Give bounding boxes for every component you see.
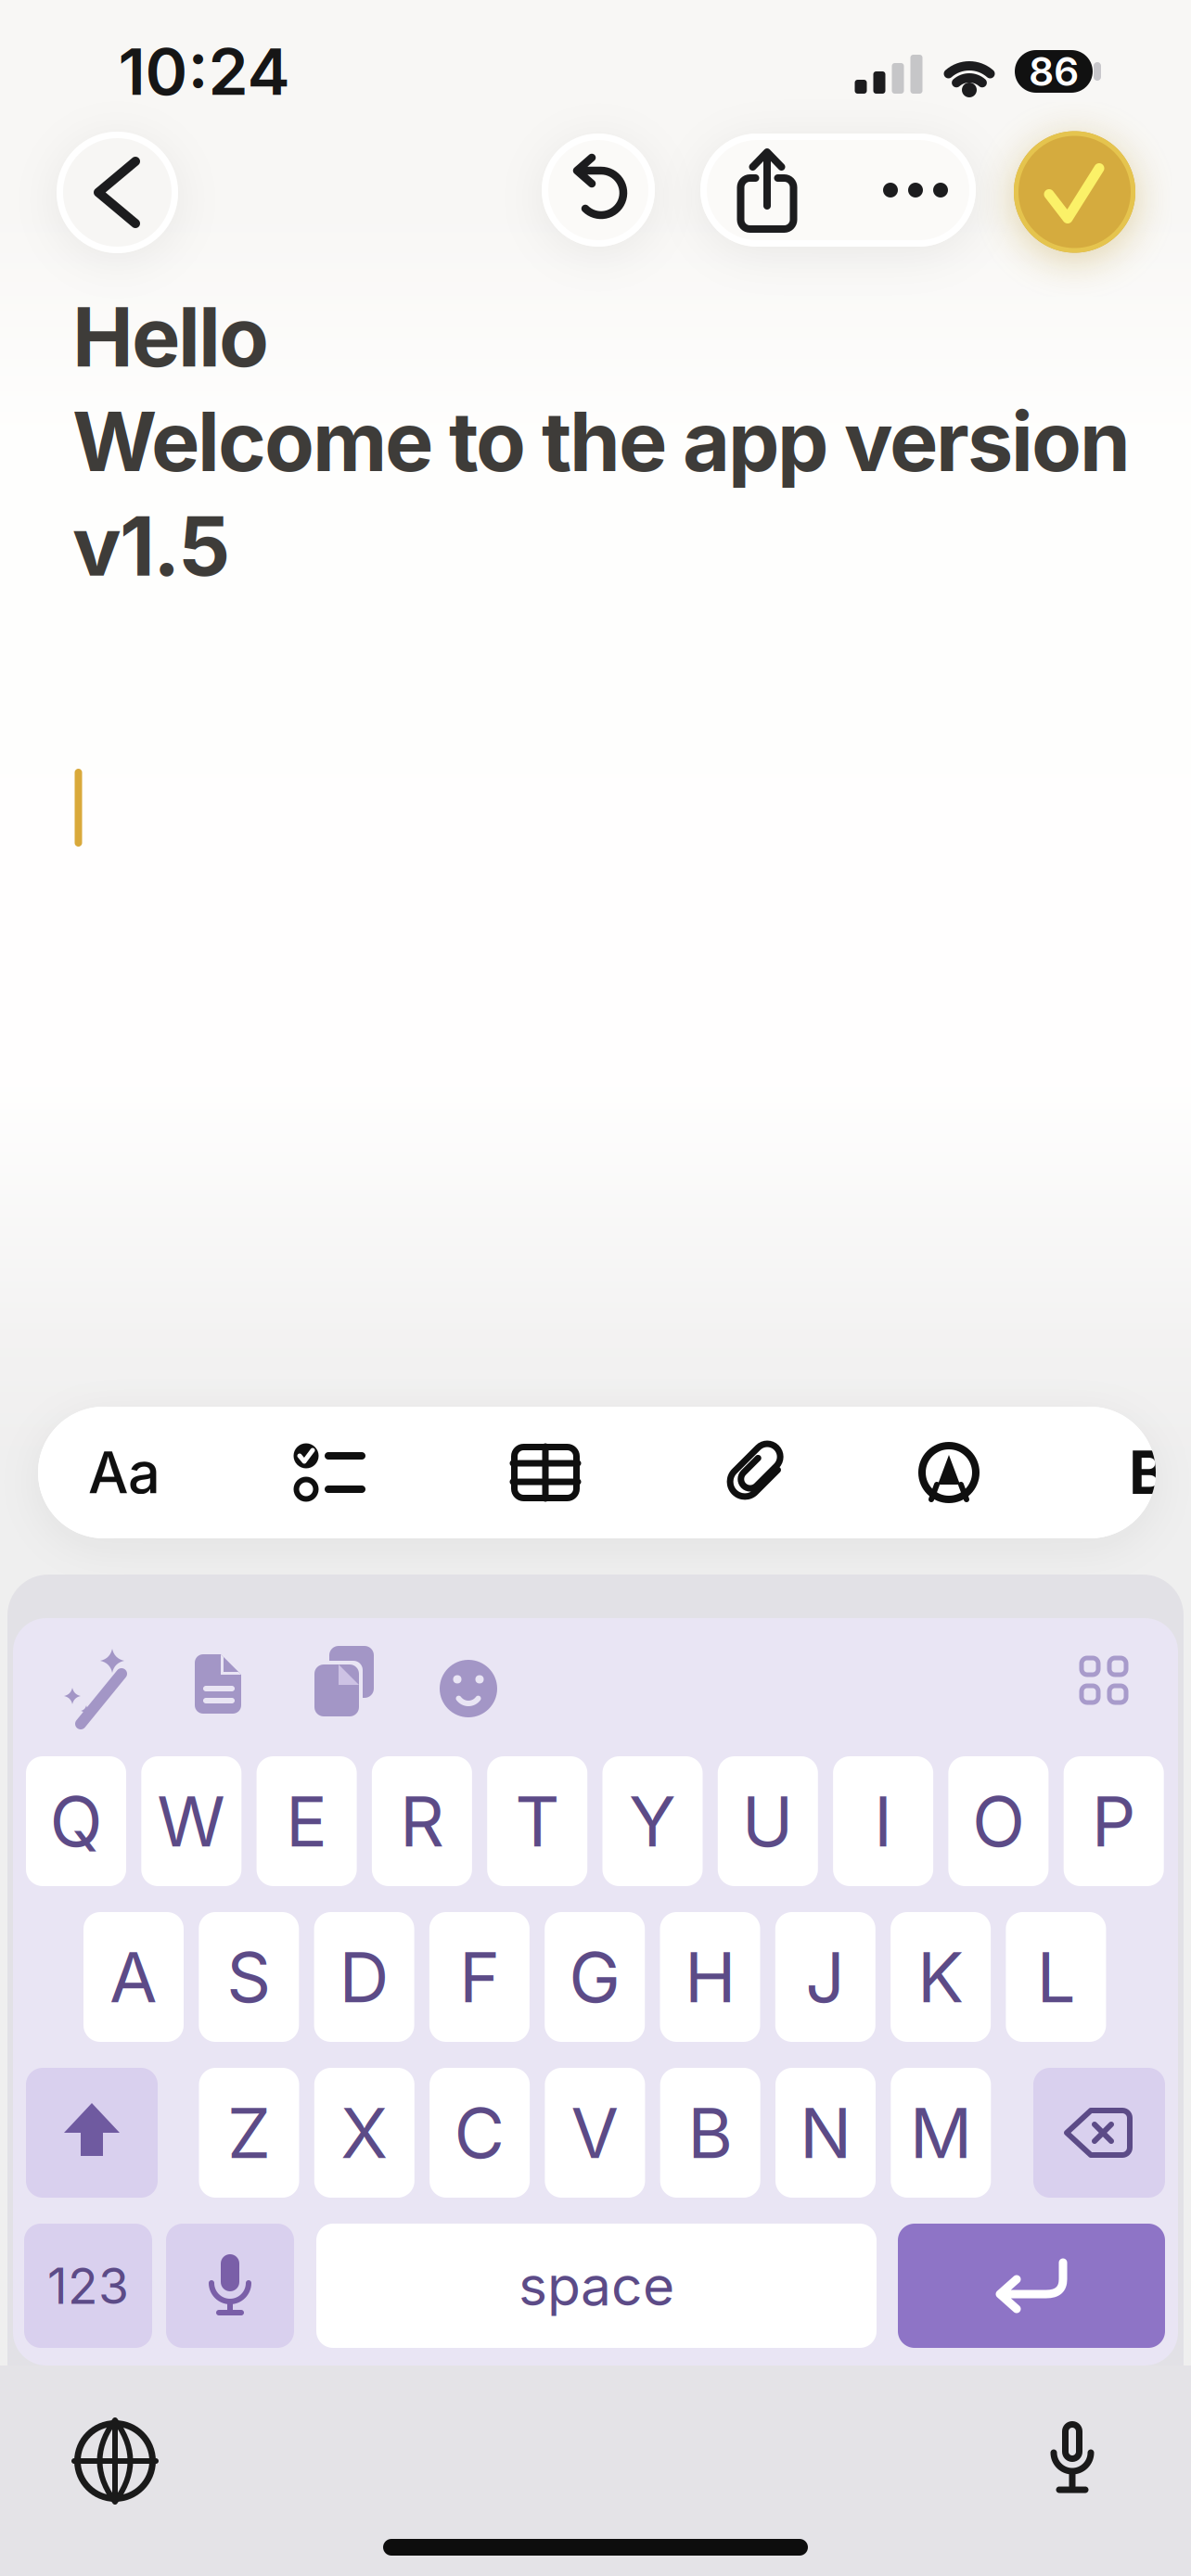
staticText: Q (50, 1780, 102, 1862)
staticText: O (972, 1780, 1025, 1862)
staticText: Y (629, 1780, 676, 1862)
button[interactable] (53, 1640, 155, 1742)
staticText: M (910, 2092, 972, 2174)
staticText: Aa (88, 1439, 160, 1506)
button[interactable]: M (891, 2068, 991, 2198)
button[interactable]: B (1111, 1407, 1185, 1538)
button[interactable] (685, 1407, 824, 1538)
button[interactable]: J (775, 1912, 875, 2042)
staticText: Hello Welcome to the app version v1.5 (72, 289, 1131, 594)
button[interactable] (1033, 2068, 1165, 2198)
button[interactable]: Q (26, 1756, 126, 1886)
button[interactable] (258, 1407, 397, 1538)
staticText: R (400, 1780, 444, 1862)
staticText: T (515, 1780, 560, 1862)
staticText: 123 (47, 2257, 129, 2315)
staticText: E (286, 1780, 328, 1862)
button[interactable]: Y (602, 1756, 703, 1886)
button[interactable]: L (1006, 1912, 1106, 2042)
button[interactable]: K (891, 1912, 991, 2042)
button[interactable]: Z (199, 2068, 299, 2198)
button[interactable] (898, 2224, 1165, 2348)
button[interactable] (476, 1407, 615, 1538)
button[interactable]: F (429, 1912, 530, 2042)
button[interactable] (166, 2224, 294, 2348)
button[interactable]: X (314, 2068, 414, 2198)
button[interactable]: G (545, 1912, 645, 2042)
staticText: A (109, 1936, 158, 2018)
button[interactable] (167, 1633, 269, 1735)
staticText: K (917, 1936, 964, 2018)
staticText: Z (227, 2092, 271, 2174)
button[interactable]: T (487, 1756, 587, 1886)
staticText: G (569, 1936, 621, 2018)
button[interactable] (855, 134, 976, 247)
button[interactable]: P (1064, 1756, 1164, 1886)
staticText: I (874, 1780, 892, 1862)
button[interactable] (290, 1631, 392, 1733)
button[interactable]: B (660, 2068, 760, 2198)
button[interactable] (57, 132, 178, 253)
staticText: J (805, 1936, 845, 2018)
button[interactable]: Aa (55, 1407, 194, 1538)
staticText: L (1036, 1936, 1075, 2018)
button[interactable]: C (430, 2068, 530, 2198)
button[interactable] (542, 134, 655, 247)
button[interactable] (879, 1407, 1018, 1538)
button[interactable]: R (372, 1756, 472, 1886)
staticText: X (341, 2092, 388, 2174)
staticText: W (157, 1780, 226, 1862)
button[interactable]: space (316, 2224, 877, 2348)
staticText: N (800, 2092, 852, 2174)
staticText: 10:24 (118, 33, 290, 109)
staticText: V (571, 2092, 619, 2174)
staticText: B (688, 2092, 733, 2174)
staticText: C (454, 2092, 505, 2174)
staticText: F (459, 1936, 500, 2018)
button[interactable]: U (718, 1756, 818, 1886)
button[interactable]: O (948, 1756, 1049, 1886)
button[interactable] (26, 2068, 158, 2198)
button[interactable]: S (199, 1912, 299, 2042)
button[interactable] (417, 1638, 519, 1740)
staticText: 86 (1029, 48, 1079, 95)
button[interactable] (64, 2410, 166, 2512)
staticText: P (1091, 1780, 1136, 1862)
button[interactable] (1053, 1629, 1155, 1731)
button[interactable]: I (833, 1756, 933, 1886)
button[interactable] (1021, 2414, 1123, 2516)
staticText: space (519, 2254, 674, 2318)
staticText: S (227, 1936, 271, 2018)
staticText: B (1129, 1437, 1168, 1507)
button[interactable]: E (257, 1756, 357, 1886)
button[interactable]: D (314, 1912, 414, 2042)
staticText: H (685, 1936, 736, 2018)
button[interactable]: V (545, 2068, 645, 2198)
button[interactable]: N (775, 2068, 876, 2198)
staticText: D (339, 1936, 389, 2018)
button[interactable] (704, 134, 824, 247)
button[interactable] (1014, 131, 1135, 253)
button[interactable]: 123 (24, 2224, 152, 2348)
staticText: U (742, 1780, 794, 1862)
button[interactable]: H (660, 1912, 760, 2042)
button[interactable]: W (141, 1756, 241, 1886)
button[interactable]: A (83, 1912, 184, 2042)
